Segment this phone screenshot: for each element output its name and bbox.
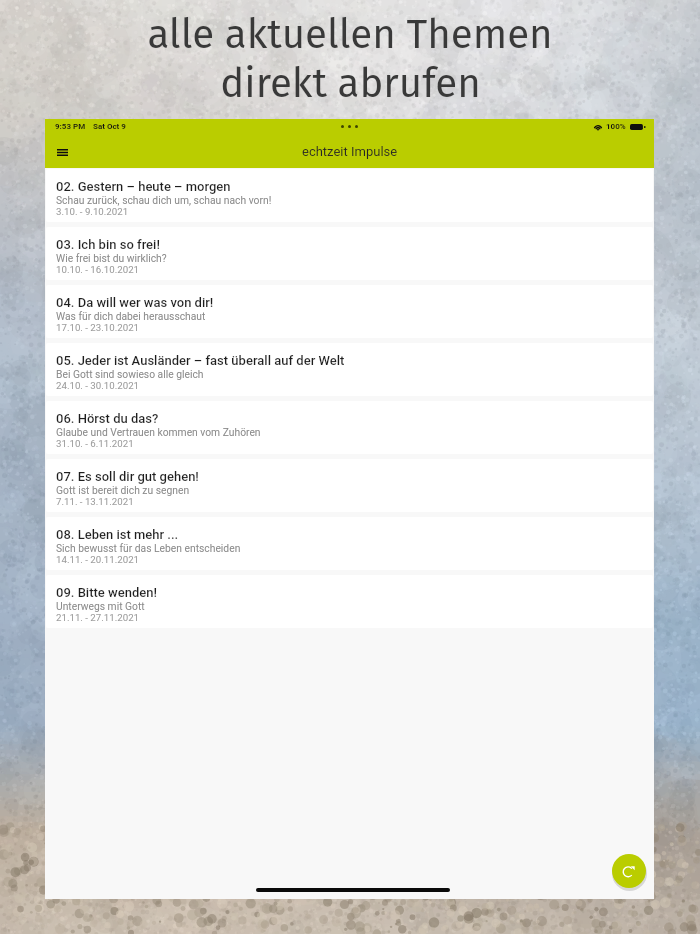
staticText: 07. Es soll dir gut gehen! — [56, 469, 199, 484]
button[interactable]: 03. Ich bin so frei! — [46, 227, 653, 280]
button[interactable]: 08. Leben ist mehr ... — [46, 517, 653, 570]
staticText: 17.10. - 23.10.2021 — [56, 322, 140, 333]
staticText: Glaube und Vertrauen kommen vom Zuhören — [56, 426, 261, 438]
staticText: 21.11. - 27.11.2021 — [56, 612, 140, 623]
button[interactable]: Refresh — [612, 854, 646, 888]
staticText: Gott ist bereit dich zu segnen — [56, 484, 190, 496]
button[interactable]: 07. Es soll dir gut gehen! — [46, 459, 653, 512]
staticText: Was für dich dabei herausschaut — [56, 310, 206, 322]
staticText: alle aktuellen Themen — [147, 10, 553, 58]
button[interactable]: 05. Jeder ist Ausländer – fast überall a… — [46, 343, 653, 396]
staticText: 3.10. - 9.10.2021 — [56, 206, 129, 217]
button[interactable]: 09. Bitte wenden! — [46, 575, 653, 628]
staticText: 31.10. - 6.11.2021 — [56, 438, 134, 449]
staticText: echtzeit Impulse — [302, 144, 398, 159]
staticText: 7.11. - 13.11.2021 — [56, 496, 134, 507]
button[interactable]: 06. Hörst du das? — [46, 401, 653, 454]
staticText: 03. Ich bin so frei! — [56, 237, 160, 252]
staticText: Sich bewusst für das Leben entscheiden — [56, 542, 241, 554]
staticText: Bei Gott sind sowieso alle gleich — [56, 368, 204, 380]
staticText: 10.10. - 16.10.2021 — [56, 264, 140, 275]
staticText: 09. Bitte wenden! — [56, 585, 157, 600]
staticText: 06. Hörst du das? — [56, 411, 159, 426]
staticText: 9:53 PM — [55, 122, 86, 131]
staticText: 05. Jeder ist Ausländer – fast überall a… — [56, 353, 345, 368]
staticText: Unterwegs mit Gott — [56, 600, 145, 612]
staticText: 14.11. - 20.11.2021 — [56, 554, 140, 565]
staticText: Sat Oct 9 — [93, 122, 126, 131]
staticText: Schau zurück, schau dich um, schau nach … — [56, 194, 272, 206]
button[interactable]: Menu — [48, 138, 76, 166]
button[interactable]: 04. Da will wer was von dir! — [46, 285, 653, 338]
staticText: 100% — [606, 122, 626, 131]
staticText: 24.10. - 30.10.2021 — [56, 380, 140, 391]
staticText: 02. Gestern – heute – morgen — [56, 179, 231, 194]
staticText: 08. Leben ist mehr ... — [56, 527, 179, 542]
staticText: Wie frei bist du wirklich? — [56, 252, 167, 264]
button[interactable]: 02. Gestern – heute – morgen — [46, 169, 653, 222]
staticText: direkt abrufen — [220, 59, 481, 107]
staticText: 04. Da will wer was von dir! — [56, 295, 214, 310]
